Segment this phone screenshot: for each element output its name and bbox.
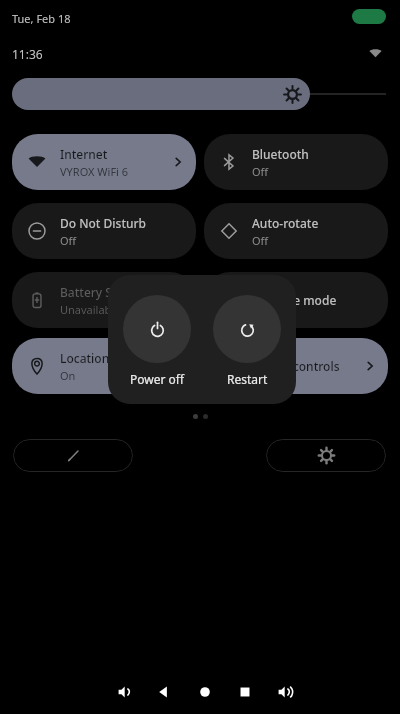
staticText: Power off xyxy=(130,371,185,387)
staticText: Off xyxy=(252,233,269,248)
staticText: Location xyxy=(60,350,110,366)
staticText: VYROX WiFi 6 xyxy=(60,164,129,179)
staticText: Off xyxy=(60,233,77,248)
staticText: Internet xyxy=(60,146,108,162)
staticText: Auto-rotate xyxy=(252,215,319,231)
staticText: Battery Saver xyxy=(60,284,138,300)
button[interactable]: Home xyxy=(193,680,217,704)
button[interactable]: Recents xyxy=(233,680,257,704)
button[interactable]: Battery Saver xyxy=(12,272,196,328)
staticText: Off xyxy=(252,164,269,179)
staticText: Device controls xyxy=(252,358,340,374)
staticText: On xyxy=(60,368,76,383)
button[interactable]: Bluetooth xyxy=(204,134,388,190)
staticText: 11:36 xyxy=(12,46,43,62)
button[interactable]: Back xyxy=(152,680,176,704)
button[interactable]: Location xyxy=(12,338,196,394)
staticText: Tue, Feb 18 xyxy=(12,11,71,26)
staticText: Restart xyxy=(227,371,268,387)
staticText: Unavailable xyxy=(60,302,121,317)
button[interactable]: Power off xyxy=(118,295,196,387)
staticText: Bluetooth xyxy=(252,146,309,162)
button[interactable]: Volume down xyxy=(113,680,137,704)
button[interactable]: Do Not Disturb xyxy=(12,203,196,259)
button[interactable]: Edit tiles xyxy=(13,439,133,472)
button[interactable]: Airplane mode xyxy=(204,272,388,328)
button[interactable]: Device controls xyxy=(204,338,388,394)
staticText: Do Not Disturb xyxy=(60,215,147,231)
button[interactable]: Restart xyxy=(208,295,286,387)
button[interactable]: Auto-rotate xyxy=(204,203,388,259)
staticText: Airplane mode xyxy=(252,292,337,308)
button[interactable]: Volume up xyxy=(273,680,297,704)
button[interactable]: Brightness xyxy=(12,78,388,110)
button[interactable]: Internet xyxy=(12,134,196,190)
button[interactable]: Settings xyxy=(266,439,386,472)
